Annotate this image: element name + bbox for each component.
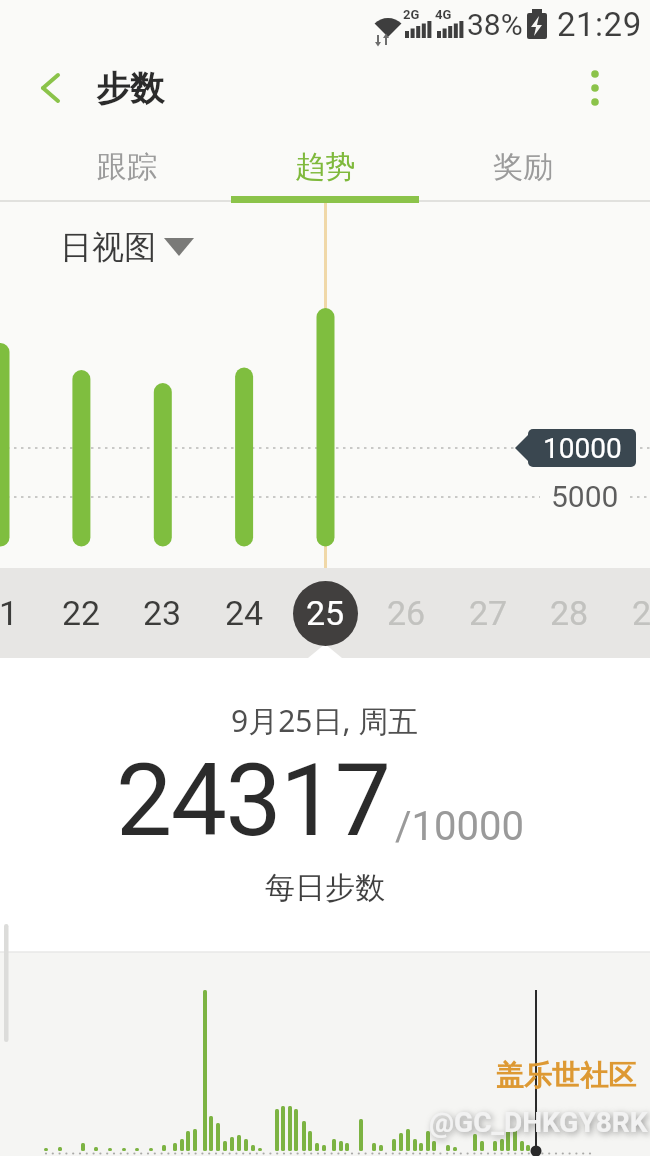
staticText: 步数 [96,67,164,110]
button[interactable]: 23 [122,568,203,658]
staticText: 9月25日, 周五 [231,700,419,741]
staticText: 22 [62,593,101,633]
button[interactable]: 跟踪 [19,130,235,203]
button[interactable]: 奖励 [415,130,631,203]
staticText: 跟踪 [97,148,157,186]
staticText: 27 [469,593,508,633]
button[interactable] [570,60,630,115]
button[interactable]: 24 [204,568,285,658]
staticText: 25 [306,593,345,633]
button[interactable]: 21 [0,568,40,658]
staticText: 日视图 [60,227,156,267]
button[interactable]: 27 [448,568,529,658]
staticText: 26 [387,593,426,633]
staticText: 28 [550,593,589,633]
button[interactable]: 趋势 [217,130,433,203]
button[interactable]: 29 [611,568,650,658]
staticText: 24317 [116,742,390,859]
staticText: 21 [0,593,19,633]
staticText: 21:29 [557,5,642,44]
staticText: /10000 [395,803,524,850]
staticText: 奖励 [493,148,553,186]
button[interactable] [20,60,90,115]
button[interactable]: 25 [285,568,366,658]
staticText: 24 [225,593,264,633]
button[interactable] [40,218,210,274]
staticText: 每日步数 [265,869,385,907]
button[interactable]: 28 [529,568,610,658]
button[interactable]: 22 [41,568,122,658]
staticText: 趋势 [295,148,355,186]
staticText: 2G [403,7,420,22]
staticText: 4G [435,7,452,22]
staticText: 23 [143,593,182,633]
button[interactable]: 26 [366,568,447,658]
staticText: 29 [632,593,650,633]
staticText: 5000 [551,479,619,514]
staticText: 盖乐世社区 [496,1058,636,1093]
staticText: 10000 [543,432,622,465]
staticText: 38% [467,7,523,42]
staticText: @GC_DHKGY8RK [429,1106,648,1139]
